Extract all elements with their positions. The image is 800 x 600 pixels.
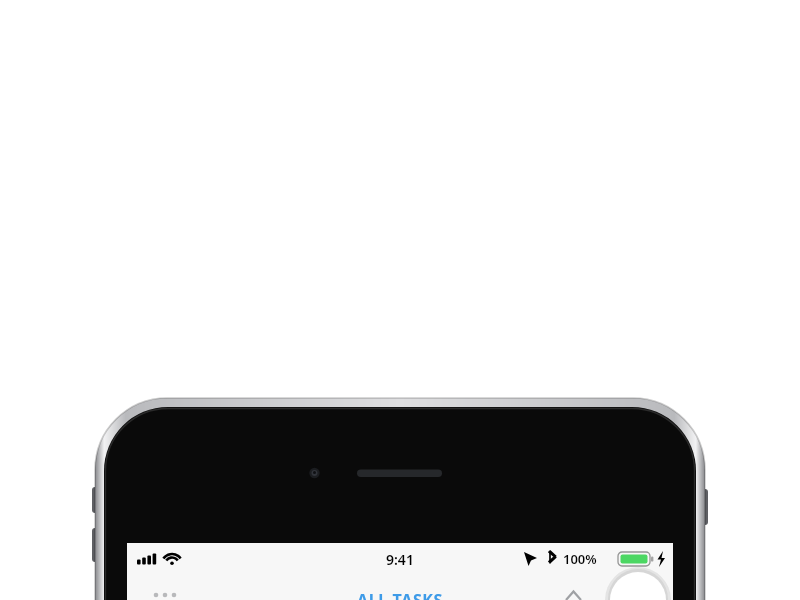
button[interactable]: iPhone showing All Tasks screen (0, 0, 800, 600)
